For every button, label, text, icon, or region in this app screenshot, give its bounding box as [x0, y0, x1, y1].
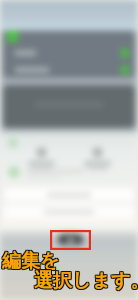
button[interactable]	[5, 205, 133, 219]
staticText: 選択します。	[34, 270, 138, 294]
staticText: 選択します。	[34, 268, 138, 292]
staticText: 編集を	[1, 248, 59, 272]
button[interactable]	[5, 188, 133, 201]
button[interactable]	[3, 62, 135, 78]
staticText: 編集を	[1, 250, 59, 274]
staticText: 選択します。	[33, 270, 138, 294]
staticText: 編集を	[3, 250, 61, 274]
staticText: 選択します。	[35, 270, 138, 294]
staticText: 編集を	[2, 250, 60, 274]
button[interactable]	[3, 44, 135, 62]
staticText: 編集を	[1, 249, 59, 273]
staticText: 編集を	[2, 249, 60, 273]
staticText: 選択します。	[34, 269, 138, 293]
staticText: 編集を	[3, 248, 61, 272]
staticText: 編集を	[3, 249, 61, 273]
staticText: 選択します。	[35, 269, 138, 293]
staticText: 選択します。	[35, 268, 138, 292]
staticText: 編集	[66, 237, 76, 243]
button[interactable]: メニュー	[80, 148, 114, 170]
button[interactable]: 編集	[58, 234, 83, 245]
staticText: 選択します。	[33, 269, 138, 293]
staticText: 選択します。	[33, 268, 138, 292]
button[interactable]: メニュー	[24, 148, 58, 170]
staticText: 編集を	[2, 248, 60, 272]
